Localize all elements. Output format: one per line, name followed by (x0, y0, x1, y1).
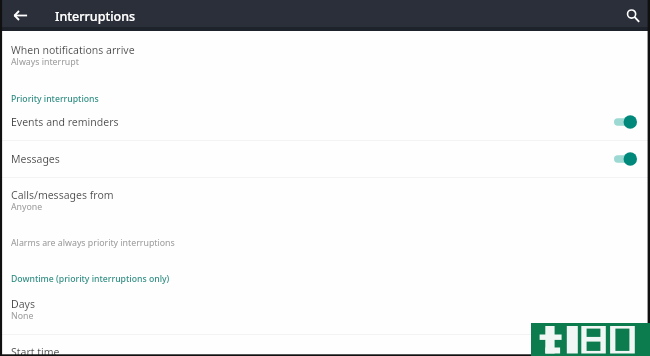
staticText: Start time (11, 345, 60, 356)
staticText: Days (11, 297, 35, 311)
staticText: When notifications arrive (11, 43, 135, 57)
button[interactable]: Toggle Events and reminders (614, 115, 637, 129)
staticText: Alarms are always priority interruptions (11, 237, 175, 249)
button[interactable]: Toggle Messages (614, 152, 637, 166)
staticText: Downtime (priority interruptions only) (11, 273, 170, 285)
staticText: Anyone (11, 201, 43, 213)
button[interactable]: Messages (0, 146, 650, 171)
button[interactable]: Search (619, 2, 646, 29)
staticText: None (11, 310, 34, 322)
staticText: Events and reminders (11, 115, 119, 129)
staticText: Messages (11, 152, 60, 166)
button[interactable]: When notifications arrive (0, 43, 650, 71)
staticText: Always interrupt (11, 56, 79, 68)
button[interactable]: Days (0, 297, 650, 325)
staticText: Interruptions (55, 8, 136, 25)
staticText: Calls/messages from (11, 188, 114, 202)
button[interactable]: Calls/messages from (0, 188, 650, 216)
button[interactable]: Events and reminders (0, 109, 650, 134)
staticText: Priority interruptions (11, 93, 99, 105)
button[interactable]: Start time (0, 345, 650, 356)
button[interactable]: Back (7, 2, 34, 29)
